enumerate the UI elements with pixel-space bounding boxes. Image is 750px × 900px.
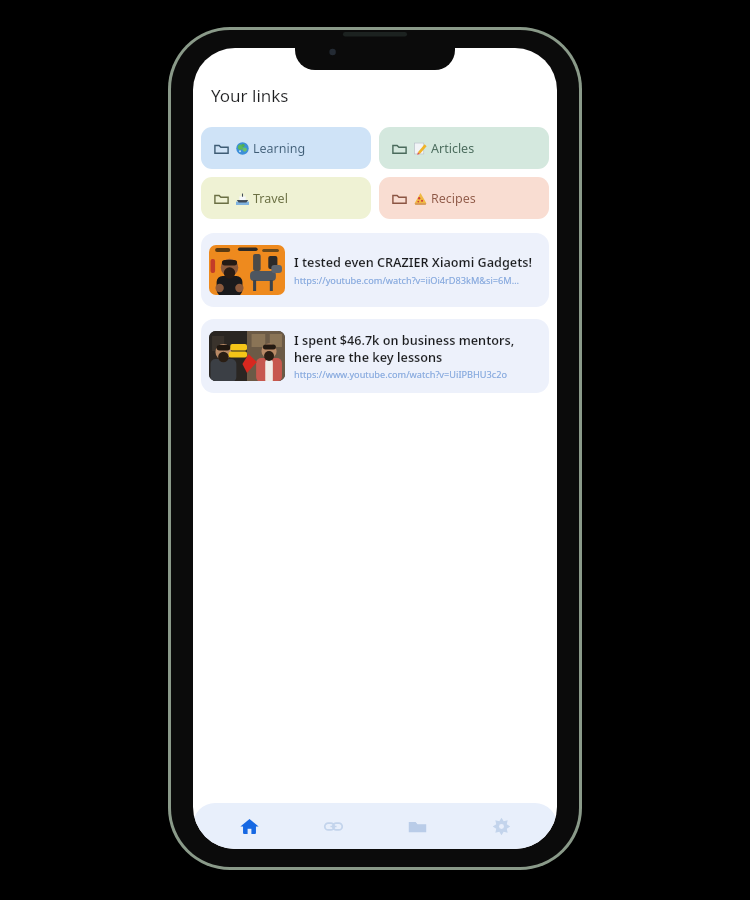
button[interactable]: I tested even CRAZIER Xiaomi Gadgets!	[201, 233, 549, 307]
staticText: Your links	[211, 84, 289, 107]
button[interactable]: Home	[221, 809, 277, 843]
staticText: Recipes	[431, 190, 476, 207]
button[interactable]: Recipes	[379, 177, 549, 219]
button[interactable]: Travel	[201, 177, 371, 219]
staticText: https://youtube.com/watch?v=iiOi4rD83kM&…	[294, 274, 519, 287]
button[interactable]: Settings	[473, 809, 529, 843]
staticText: Articles	[431, 140, 475, 157]
button[interactable]: Learning	[201, 127, 371, 169]
staticText: I tested even CRAZIER Xiaomi Gadgets!	[294, 254, 532, 271]
button[interactable]: I spent $46.7k on business mentors, here…	[201, 319, 549, 393]
staticText: Learning	[253, 140, 306, 157]
staticText: https://www.youtube.com/watch?v=UiIPBHU3…	[294, 368, 508, 381]
button[interactable]: Folders	[389, 809, 445, 843]
staticText: Travel	[253, 190, 288, 207]
button[interactable]: Articles	[379, 127, 549, 169]
button[interactable]: Links	[305, 809, 361, 843]
staticText: I spent $46.7k on business mentors, here…	[294, 332, 541, 365]
